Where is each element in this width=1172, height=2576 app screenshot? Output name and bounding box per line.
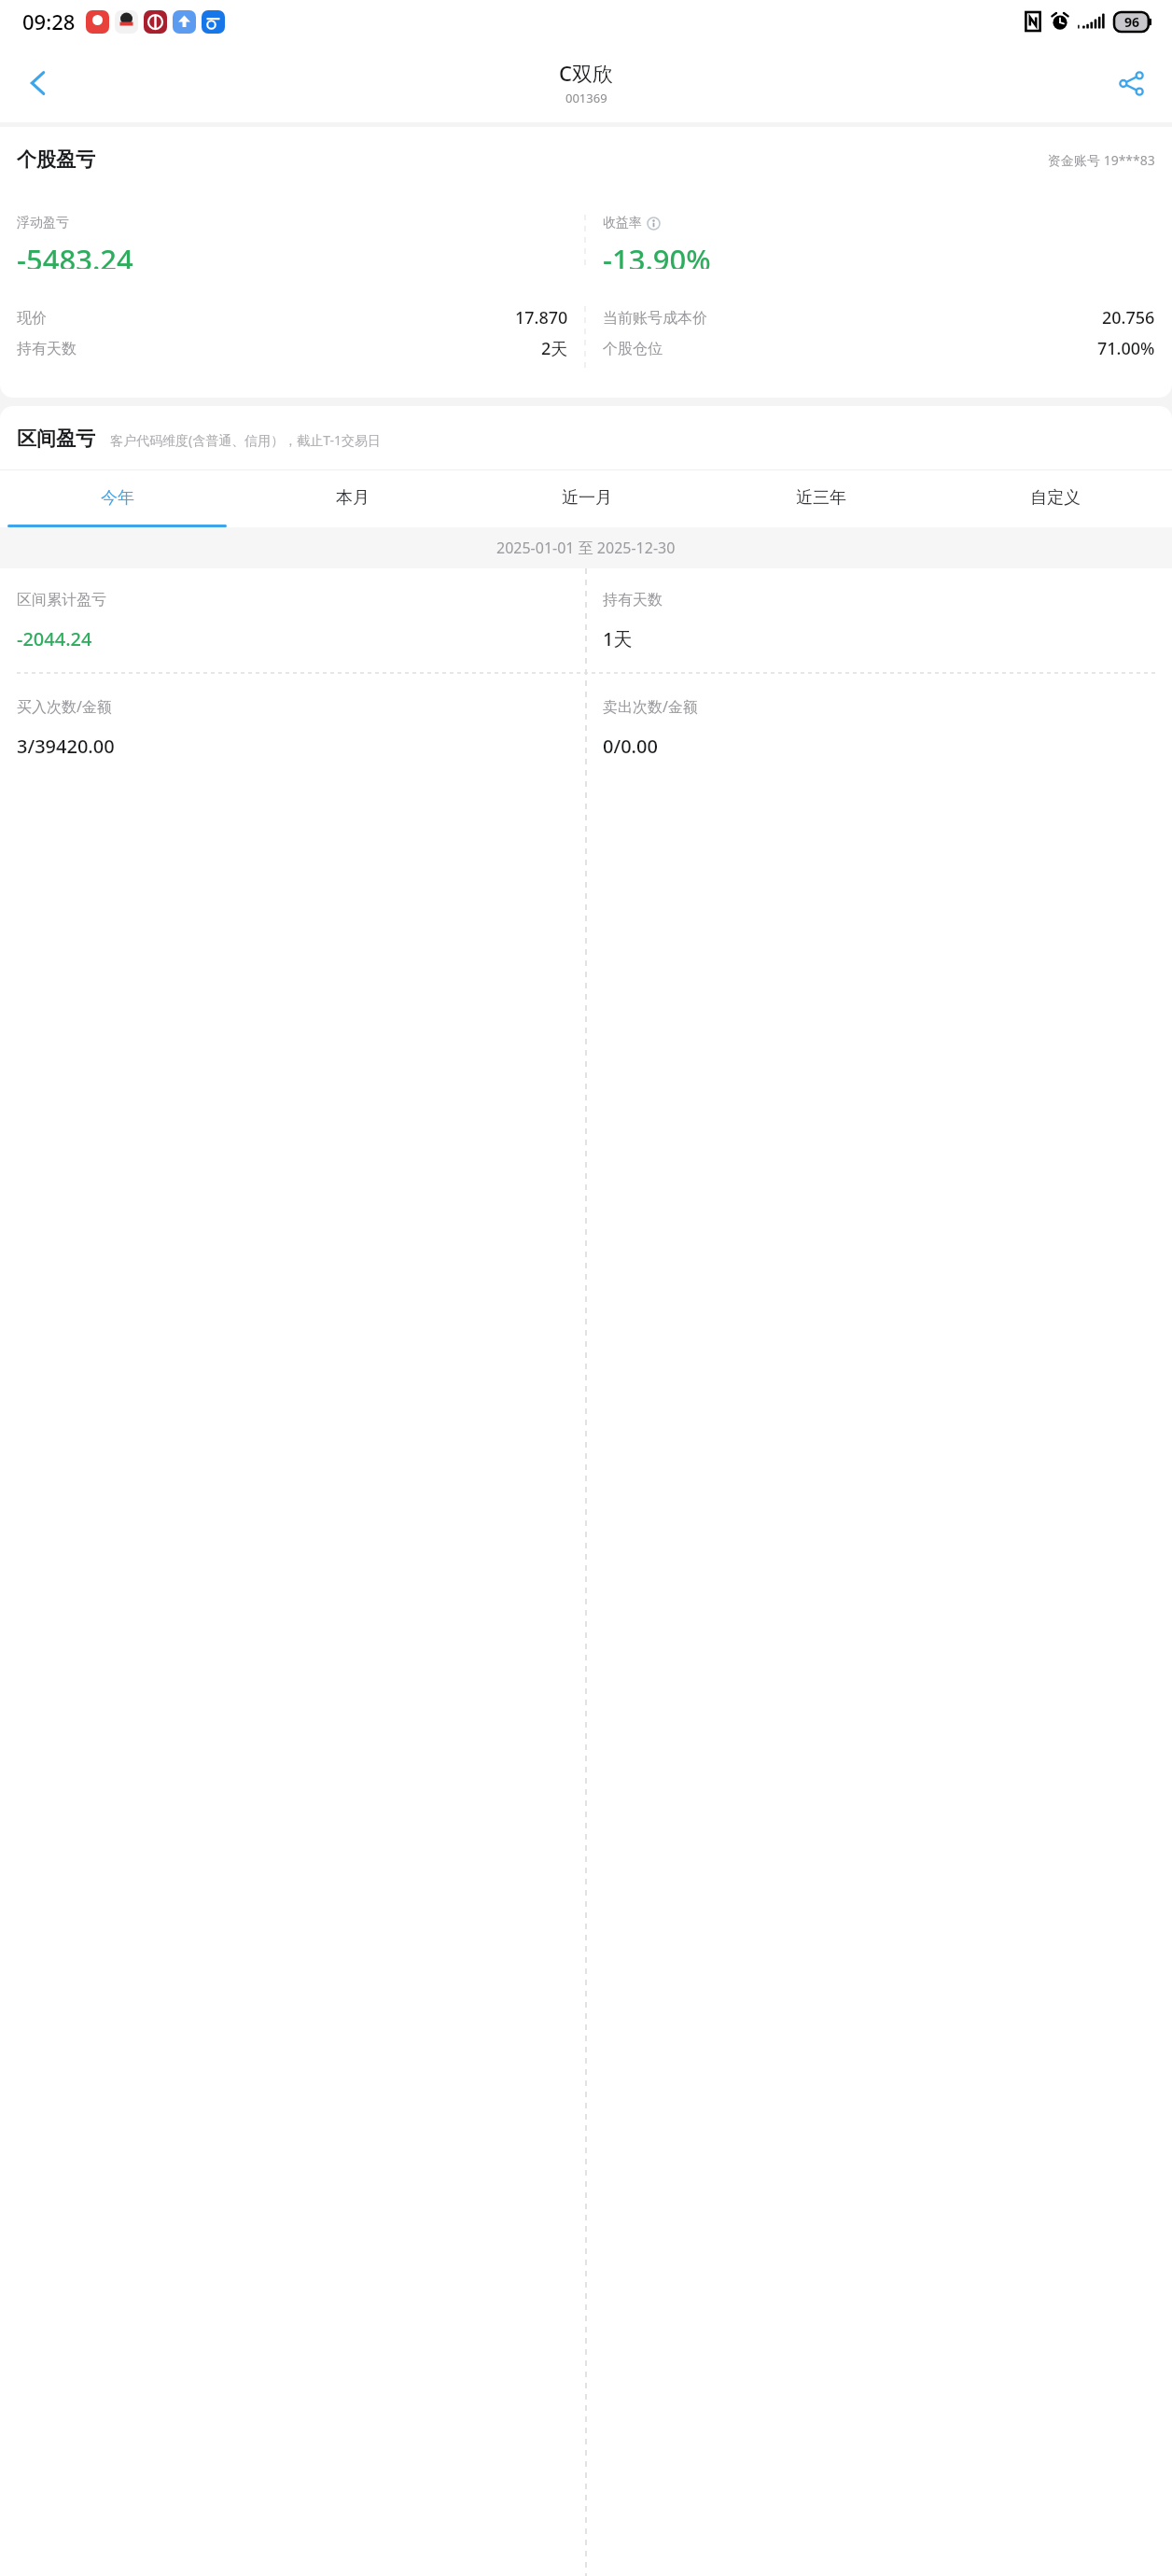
staticText: 2025-01-01 至 2025-12-30 <box>496 538 676 558</box>
staticText: 1天 <box>603 626 633 651</box>
staticText: 收益率 <box>603 215 642 231</box>
staticText: 17.870 <box>515 306 568 329</box>
staticText: -2044.24 <box>17 626 92 651</box>
staticText: -5483.24 <box>17 240 133 269</box>
staticText: 持有天数 <box>603 591 663 609</box>
staticText: -13.90% <box>603 240 711 269</box>
staticText: 3/39420.00 <box>17 734 115 759</box>
button[interactable]: 近一月 <box>469 470 704 525</box>
staticText: C双欣 <box>559 59 613 87</box>
staticText: 2天 <box>541 337 568 360</box>
button[interactable]: 近三年 <box>704 470 938 525</box>
staticText: 客户代码维度(含普通、信用），截止T-1交易日 <box>110 431 381 449</box>
button[interactable]: 自定义 <box>938 470 1172 525</box>
button[interactable]: 今年 <box>0 470 235 525</box>
button[interactable]: Back <box>9 54 67 112</box>
staticText: 现价 <box>17 309 47 328</box>
staticText: 卖出次数/金额 <box>603 696 698 717</box>
staticText: 0/0.00 <box>603 734 658 759</box>
button[interactable]: 本月 <box>235 470 469 525</box>
staticText: 近一月 <box>562 487 612 509</box>
staticText: 区间盈亏 <box>17 427 95 451</box>
staticText: 区间累计盈亏 <box>17 591 106 609</box>
staticText: 浮动盈亏 <box>17 215 69 231</box>
staticText: 001369 <box>565 90 607 106</box>
staticText: 96 <box>1124 13 1140 31</box>
staticText: 今年 <box>101 487 134 509</box>
button[interactable]: Share <box>1103 55 1159 111</box>
staticText: 71.00% <box>1097 337 1155 360</box>
staticText: 当前账号成本价 <box>603 309 707 328</box>
staticText: 自定义 <box>1030 487 1081 509</box>
staticText: 近三年 <box>796 487 846 509</box>
staticText: 买入次数/金额 <box>17 696 112 717</box>
staticText: 本月 <box>336 487 370 509</box>
staticText: 09:28 <box>22 7 76 35</box>
staticText: 个股盈亏 <box>17 147 95 172</box>
staticText: 个股仓位 <box>603 340 663 358</box>
staticText: 持有天数 <box>17 340 77 358</box>
staticText: 20.756 <box>1102 306 1155 329</box>
staticText: 资金账号 19***83 <box>1048 151 1155 169</box>
